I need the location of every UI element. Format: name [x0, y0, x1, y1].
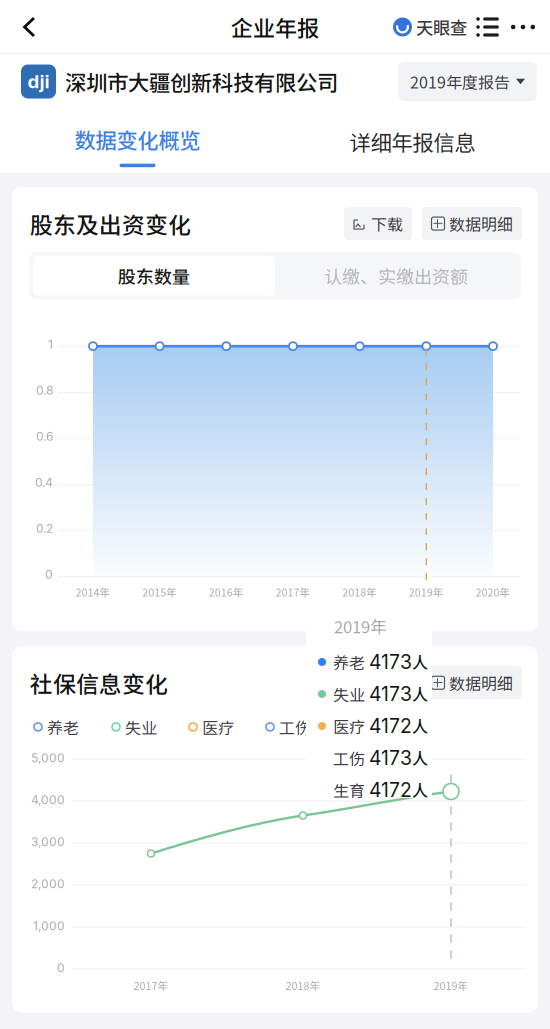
staticText: 5,000	[31, 750, 65, 765]
staticText: 2019年	[409, 584, 444, 600]
staticText: 2017年	[133, 977, 168, 993]
staticText: 生育	[356, 715, 388, 738]
staticText: 4172	[369, 778, 412, 802]
staticText: 人	[412, 714, 428, 738]
button[interactable]: 数据变化概览	[0, 109, 275, 173]
staticText: 4173	[369, 682, 412, 706]
button[interactable]: 下载	[344, 207, 412, 240]
staticText: 2016年	[209, 584, 244, 600]
staticText: 2014年	[75, 584, 110, 600]
staticText: 2019年	[433, 977, 468, 993]
staticText: 失业	[125, 715, 157, 738]
staticText: 0	[57, 960, 65, 975]
button[interactable]: 数据明细	[422, 207, 522, 240]
staticText: 1,000	[33, 918, 65, 933]
staticText: 认缴、实缴出资额	[324, 263, 468, 289]
staticText: 企业年报	[231, 11, 319, 43]
button[interactable]: Back	[0, 0, 53, 54]
staticText: 0.4	[35, 475, 53, 490]
button[interactable]: 详细年报信息	[275, 109, 550, 173]
staticText: 0.8	[36, 383, 53, 398]
staticText: 生育	[333, 778, 365, 802]
staticText: 详细年报信息	[349, 126, 475, 157]
staticText: 人	[412, 746, 428, 770]
staticText: 深圳市大疆创新科技有限公司	[65, 66, 338, 97]
button[interactable]: 更多	[508, 0, 550, 54]
staticText: 0	[45, 567, 53, 582]
staticText: 2020年	[475, 584, 510, 600]
staticText: 2018年	[342, 584, 377, 600]
staticText: 数据变化概览	[74, 124, 200, 155]
staticText: 4,000	[31, 792, 65, 807]
staticText: 医疗	[333, 714, 365, 738]
staticText: 2019年	[334, 614, 387, 638]
staticText: 4173	[369, 746, 412, 770]
staticText: 数据明细	[449, 212, 513, 235]
staticText: 人	[412, 682, 428, 706]
button[interactable]: 认缴、实缴出资额	[275, 256, 517, 296]
staticText: 失业	[333, 682, 365, 706]
staticText: 数据明细	[449, 671, 513, 694]
button[interactable]: 2019年度报告	[398, 62, 537, 101]
staticText: 2018年	[285, 977, 320, 993]
staticText: 2017年	[275, 584, 310, 600]
staticText: 0.2	[36, 521, 53, 536]
staticText: 工伤	[279, 715, 311, 738]
staticText: 2019年度报告	[410, 70, 510, 93]
staticText: 天眼查	[416, 14, 467, 40]
staticText: 股东及出资变化	[30, 207, 191, 240]
staticText: 2015年	[142, 584, 177, 600]
staticText: dji	[27, 70, 49, 93]
staticText: 3,000	[31, 834, 65, 849]
staticText: 养老	[47, 715, 79, 738]
staticText: 下载	[371, 212, 403, 235]
staticText: 社保信息变化	[30, 666, 168, 699]
staticText: 2,000	[31, 876, 65, 891]
staticText: 工伤	[333, 746, 365, 770]
staticText: 人	[412, 778, 428, 802]
button[interactable]: 数据明细	[422, 666, 522, 699]
staticText: 医疗	[202, 715, 234, 738]
staticText: 养老	[333, 650, 365, 674]
staticText: 4173	[369, 650, 412, 674]
staticText: 人	[412, 650, 428, 674]
button[interactable]: 股东数量	[33, 256, 275, 296]
staticText: 4172	[369, 714, 412, 738]
button[interactable]: 目录	[467, 0, 508, 54]
staticText: 1	[48, 337, 53, 352]
staticText: 0.6	[36, 429, 53, 444]
staticText: 股东数量	[118, 263, 190, 289]
